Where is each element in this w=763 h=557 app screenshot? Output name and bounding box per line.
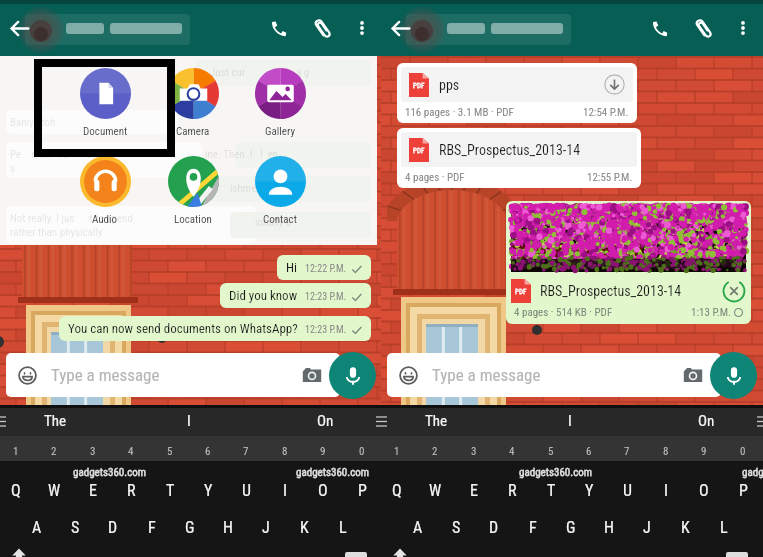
staticText: gadgets360.com	[296, 466, 370, 479]
staticText: PDF	[515, 288, 527, 296]
button[interactable]: Call	[261, 0, 294, 56]
staticText: 2	[432, 445, 438, 458]
staticText: Contact	[263, 213, 297, 226]
staticText: O	[699, 481, 709, 500]
staticText: R	[127, 481, 136, 500]
staticText: F	[148, 518, 156, 537]
staticText: 8	[282, 445, 288, 458]
button[interactable]: Type a message	[387, 353, 721, 397]
staticText: 4 pages · PDF	[405, 171, 465, 184]
staticText: F	[529, 518, 537, 537]
button[interactable]: More options	[348, 0, 376, 56]
staticText: 12:23 P.M.	[305, 291, 347, 303]
staticText: W	[429, 481, 442, 500]
staticText: Gallery	[265, 125, 296, 138]
staticText: J	[262, 518, 270, 537]
staticText: rather than physically	[10, 226, 103, 239]
staticText: 5	[167, 445, 173, 458]
staticText: Baniya toh	[10, 116, 56, 129]
staticText: On	[317, 412, 334, 430]
staticText: P	[358, 481, 367, 500]
button[interactable]: Download	[604, 74, 625, 95]
staticText: The	[44, 412, 67, 430]
button[interactable]: Audio	[61, 156, 149, 226]
button[interactable]: More options	[729, 0, 757, 56]
staticText: Type a message	[432, 365, 541, 385]
staticText: 7	[243, 445, 249, 458]
staticText: pps	[439, 77, 460, 93]
staticText: 6	[586, 445, 592, 458]
staticText: RBS_Prospectus_2013-14	[439, 142, 581, 158]
staticText: Did you know	[229, 288, 298, 303]
staticText: 2	[51, 445, 57, 458]
staticText: ionally a	[255, 216, 292, 229]
staticText: Not really. I jus t to spend	[10, 212, 133, 225]
button[interactable]: Attach	[306, 0, 339, 56]
staticText: 12:23 P.M.	[305, 324, 347, 336]
staticText: 1	[13, 445, 19, 458]
staticText: 116 pages · 3.1 MB · PDF	[405, 106, 514, 119]
staticText: K	[300, 518, 309, 537]
staticText: Q	[392, 481, 402, 500]
button[interactable]: Type a message	[6, 353, 340, 397]
staticText: E	[470, 481, 478, 500]
staticText: Type a message	[51, 365, 160, 385]
button[interactable]: Voice message	[710, 352, 757, 399]
button[interactable]: PDF	[397, 63, 637, 123]
staticText: 9	[701, 445, 707, 458]
staticText: 12:54 P.M.	[583, 106, 629, 119]
staticText: PDF	[413, 147, 425, 155]
staticText: 7	[624, 445, 630, 458]
staticText: A	[413, 518, 423, 537]
staticText: 0	[359, 445, 365, 458]
button[interactable]: Attach	[687, 0, 720, 56]
staticText: Y	[204, 481, 213, 500]
staticText: Location	[174, 213, 212, 226]
button[interactable]: Location	[149, 156, 237, 226]
staticText: Just cur u a g	[210, 66, 310, 79]
staticText: G	[185, 518, 195, 537]
button[interactable]: PDF	[506, 201, 751, 324]
staticText: gadgets360.com	[519, 466, 593, 479]
staticText: 4	[128, 445, 134, 458]
staticText: gadgets360.com	[73, 466, 147, 479]
button[interactable]: Document	[61, 68, 149, 138]
button[interactable]: Voice message	[329, 352, 376, 399]
staticText: 4	[509, 445, 515, 458]
staticText: The	[425, 412, 448, 430]
button[interactable]: Back	[385, 0, 415, 56]
button[interactable]: Hi	[277, 255, 371, 280]
staticText: R	[508, 481, 517, 500]
staticText: RBS_Prospectus_2013-14	[540, 283, 682, 299]
staticText: T	[547, 481, 556, 500]
staticText: K	[681, 518, 690, 537]
button[interactable]: Cancel download	[722, 279, 746, 303]
staticText: S	[71, 518, 80, 537]
staticText: P	[739, 481, 748, 500]
staticText: T	[166, 481, 175, 500]
staticText: gadgets360.com	[742, 466, 763, 479]
button[interactable]: You can now send documents on WhatsApp?	[59, 316, 371, 341]
button[interactable]: Back	[4, 0, 34, 56]
staticText: 12:22 P.M.	[305, 263, 347, 275]
staticText: Document	[83, 125, 128, 138]
staticText: Audio	[92, 213, 118, 226]
button[interactable]: Camera	[149, 68, 237, 138]
button[interactable]: Did you know	[220, 283, 371, 308]
staticText: s	[10, 162, 16, 175]
staticText: Pe e toh vo et me	[10, 148, 111, 161]
staticText: ine. Then I l en	[205, 148, 279, 161]
staticText: U	[242, 481, 251, 500]
button[interactable]: Call	[642, 0, 675, 56]
button[interactable]: PDF	[397, 128, 641, 188]
staticText: J	[643, 518, 651, 537]
staticText: 1	[394, 445, 400, 458]
button[interactable]: Gallery	[236, 68, 324, 138]
staticText: D	[108, 518, 118, 537]
button[interactable]: Contact	[236, 156, 324, 226]
staticText: 4 pages · 514 KB · PDF	[514, 306, 613, 319]
staticText: H	[223, 518, 233, 537]
staticText: On	[698, 412, 715, 430]
staticText: 6	[205, 445, 211, 458]
staticText: 5	[548, 445, 554, 458]
